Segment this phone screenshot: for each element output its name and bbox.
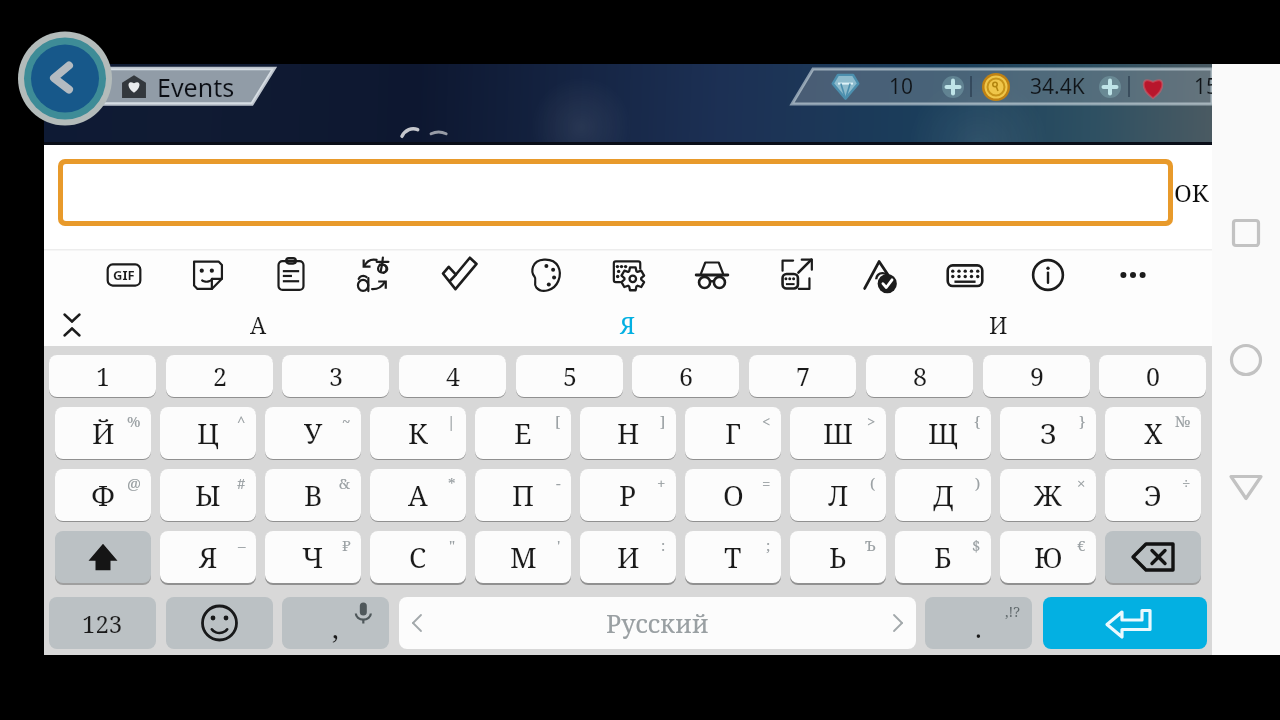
button[interactable]: Themes [520, 251, 568, 299]
button[interactable]: И [938, 304, 1058, 344]
button[interactable]: Back [1221, 460, 1271, 510]
button[interactable]: Ы [160, 469, 256, 521]
button[interactable]: Ж [1000, 469, 1096, 521]
button[interactable]: A [198, 304, 318, 344]
button[interactable]: Clipboard [267, 251, 315, 299]
button[interactable]: Recents [1221, 208, 1271, 258]
button[interactable]: Д [895, 469, 991, 521]
button[interactable]: Ь [790, 531, 886, 583]
button[interactable]: О [685, 469, 781, 521]
button[interactable]: У [265, 407, 361, 459]
button[interactable] [58, 159, 1173, 226]
button[interactable]: Х [1105, 407, 1201, 459]
button[interactable]: Ф [55, 469, 151, 521]
button[interactable]: Л [790, 469, 886, 521]
button[interactable]: Enter [1043, 597, 1207, 649]
button[interactable]: Stickers [184, 251, 232, 299]
button[interactable]: Г [685, 407, 781, 459]
button[interactable]: 4 [399, 355, 506, 397]
staticText: 9 [1030, 359, 1044, 393]
button[interactable]: Grammar check [436, 251, 484, 299]
button[interactable]: Events [56, 67, 276, 106]
button[interactable]: 9 [983, 355, 1090, 397]
button[interactable]: К [370, 407, 466, 459]
button[interactable]: Я [160, 531, 256, 583]
staticText: 2 [213, 359, 227, 393]
button[interactable]: GIF [100, 251, 148, 299]
staticText: + [657, 473, 666, 493]
staticText: П [512, 476, 535, 514]
staticText: 15 [1194, 72, 1219, 101]
button[interactable]: Backspace [1105, 531, 1201, 583]
staticText: ] [660, 411, 666, 431]
button[interactable]: М [475, 531, 571, 583]
staticText: $ [972, 535, 981, 555]
button[interactable]: Э [1105, 469, 1201, 521]
button[interactable]: Handwriting [857, 251, 905, 299]
button[interactable]: Emoji [166, 597, 273, 649]
button[interactable]: Щ [895, 407, 991, 459]
button[interactable]: , [282, 597, 389, 649]
button[interactable]: 7 [749, 355, 856, 397]
staticText: 8 [913, 359, 927, 393]
button[interactable]: 6 [632, 355, 739, 397]
button[interactable]: 123 [49, 597, 156, 649]
staticText: € [1077, 535, 1086, 555]
button[interactable]: З [1000, 407, 1096, 459]
staticText: Ь [829, 538, 847, 576]
button[interactable]: С [370, 531, 466, 583]
button[interactable]: Incognito mode [688, 251, 736, 299]
button[interactable]: Ц [160, 407, 256, 459]
button[interactable]: Ч [265, 531, 361, 583]
staticText: К [408, 414, 428, 452]
button[interactable]: Е [475, 407, 571, 459]
staticText: % [127, 411, 141, 431]
staticText: GIF [113, 266, 135, 284]
button[interactable]: Й [55, 407, 151, 459]
button[interactable]: Translate [350, 251, 398, 299]
button[interactable]: 0 [1099, 355, 1206, 397]
button[interactable]: 3 [282, 355, 389, 397]
staticText: Ы [195, 476, 221, 514]
button[interactable]: Н [580, 407, 676, 459]
button[interactable]: Resize keyboard [772, 251, 820, 299]
staticText: . [975, 609, 982, 646]
staticText: @ [127, 473, 141, 493]
button[interactable]: Shift [55, 531, 151, 583]
staticText: Ч [302, 538, 324, 576]
staticText: С [409, 538, 427, 576]
staticText: З [1040, 414, 1057, 452]
button[interactable]: Ш [790, 407, 886, 459]
button[interactable]: 1 [49, 355, 156, 397]
button[interactable]: Back [18, 38, 112, 119]
button[interactable]: 5 [516, 355, 623, 397]
staticText: Русский [606, 606, 709, 640]
button[interactable]: В [265, 469, 361, 521]
staticText: ,!? [1005, 602, 1020, 621]
button[interactable]: 8 [866, 355, 973, 397]
staticText: А [408, 476, 428, 514]
button[interactable]: Settings [604, 251, 652, 299]
button[interactable]: И [580, 531, 676, 583]
button[interactable]: П [475, 469, 571, 521]
button[interactable]: Т [685, 531, 781, 583]
button[interactable]: Я [568, 304, 688, 344]
button[interactable]: 2 [166, 355, 273, 397]
button[interactable]: OK [1170, 159, 1212, 226]
button[interactable]: Collapse keyboard toolbar [52, 305, 92, 345]
button[interactable]: Б [895, 531, 991, 583]
button[interactable]: Info [1024, 251, 1072, 299]
button[interactable]: . [925, 597, 1032, 649]
button[interactable]: Русский [399, 597, 916, 649]
button[interactable]: Home [1221, 335, 1271, 385]
staticText: Н [617, 414, 640, 452]
staticText: 6 [679, 359, 693, 393]
button[interactable]: Text editing [941, 251, 989, 299]
button[interactable]: More options [1109, 251, 1157, 299]
staticText: Я [620, 309, 636, 340]
button[interactable]: Р [580, 469, 676, 521]
staticText: A [250, 309, 267, 340]
staticText: У [304, 414, 323, 452]
button[interactable]: А [370, 469, 466, 521]
button[interactable]: Ю [1000, 531, 1096, 583]
